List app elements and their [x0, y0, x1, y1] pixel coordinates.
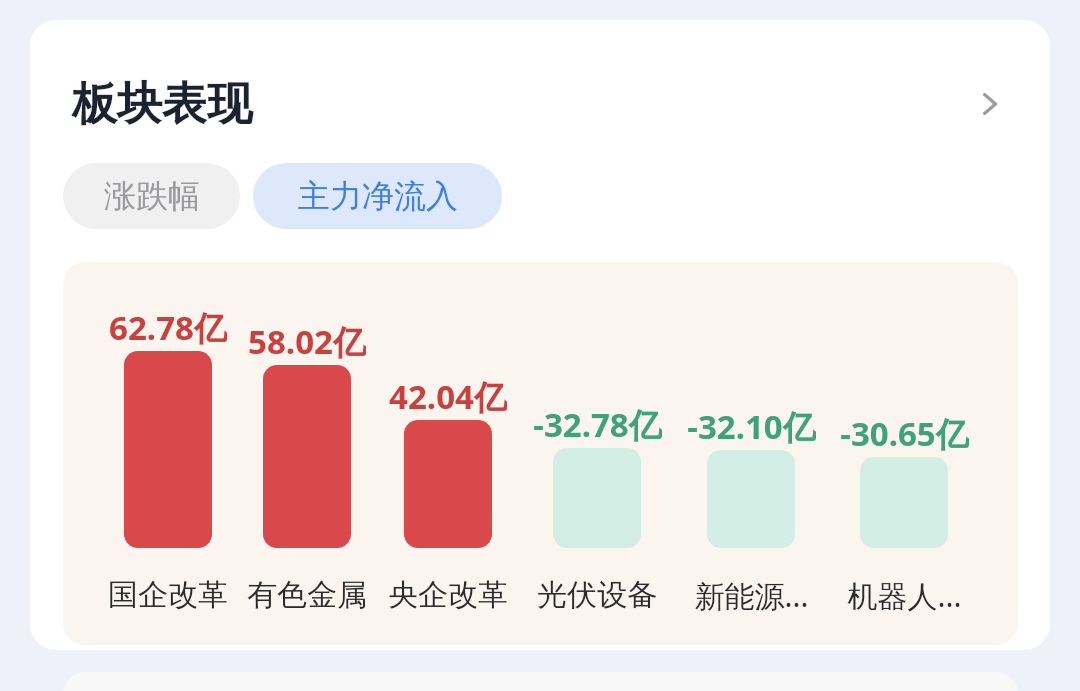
staticText: 板块表现 — [72, 76, 252, 133]
button[interactable]: 查看更多 — [960, 74, 1020, 134]
staticText: 42.04亿 — [389, 374, 507, 418]
staticText: 央企改革 — [388, 576, 508, 614]
staticText: 光伏设备 — [537, 576, 657, 614]
staticText: -32.10亿 — [687, 404, 816, 448]
button[interactable] — [860, 457, 948, 548]
staticText: 62.78亿 — [109, 305, 227, 349]
button[interactable]: 涨跌幅 — [63, 163, 240, 229]
staticText: 有色金属 — [247, 576, 367, 614]
staticText: 国企改革 — [108, 576, 228, 614]
button[interactable]: 板块表现 — [60, 62, 1020, 146]
staticText: -30.65亿 — [840, 411, 969, 455]
staticText: -32.78亿 — [533, 402, 662, 446]
button[interactable] — [404, 420, 492, 548]
staticText: 主力净流入 — [298, 176, 458, 216]
staticText: 机器人... — [847, 575, 962, 616]
staticText: 58.02亿 — [248, 319, 366, 363]
button[interactable]: 主力净流入 — [253, 163, 502, 229]
button[interactable] — [124, 351, 212, 548]
staticText: 新能源... — [694, 575, 809, 616]
button[interactable] — [553, 448, 641, 548]
button[interactable] — [263, 365, 351, 548]
button[interactable] — [707, 450, 795, 548]
staticText: 涨跌幅 — [104, 176, 200, 216]
